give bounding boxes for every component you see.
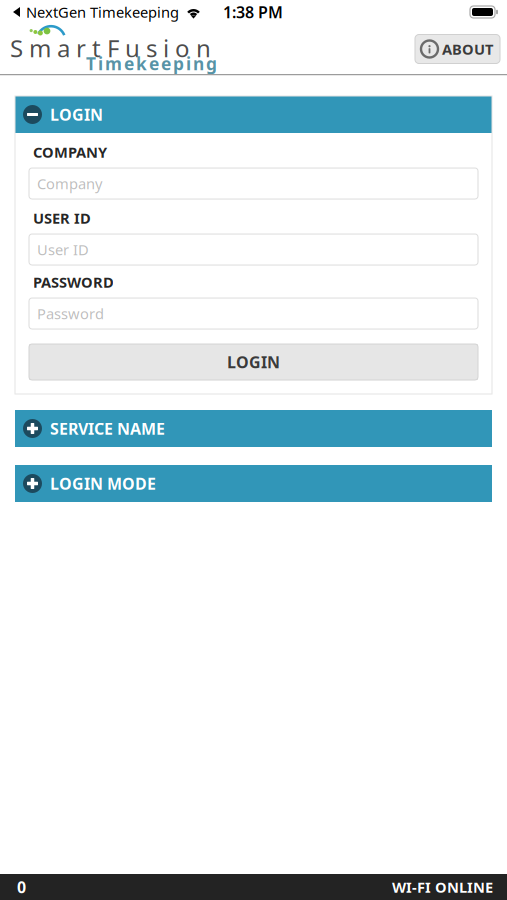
staticText: Company bbox=[37, 174, 102, 193]
staticText: LOGIN bbox=[227, 351, 280, 373]
staticText: 0 bbox=[17, 876, 26, 898]
staticText: ABOUT bbox=[442, 39, 493, 59]
staticText: USER ID bbox=[33, 208, 91, 228]
staticText: PASSWORD bbox=[33, 272, 114, 292]
staticText: LOGIN bbox=[50, 104, 103, 125]
staticText: SERVICE NAME bbox=[50, 418, 165, 439]
button[interactable]: LOGIN bbox=[29, 344, 478, 380]
button[interactable]: SERVICE NAME bbox=[15, 410, 492, 447]
staticText: COMPANY bbox=[33, 142, 107, 162]
button[interactable]: LOGIN bbox=[15, 96, 492, 133]
staticText: T i m e k e e p i n g bbox=[86, 52, 217, 75]
staticText: Password bbox=[37, 304, 104, 323]
button[interactable]: ABOUT bbox=[415, 34, 500, 63]
staticText: S m a r t F u s i o n bbox=[10, 32, 211, 64]
staticText: WI-FI ONLINE bbox=[392, 877, 493, 897]
staticText: NextGen Timekeeping bbox=[26, 2, 179, 22]
staticText: 1:38 PM bbox=[223, 1, 283, 23]
staticText: LOGIN MODE bbox=[50, 473, 156, 494]
staticText: User ID bbox=[37, 240, 89, 259]
button[interactable]: LOGIN MODE bbox=[15, 465, 492, 502]
